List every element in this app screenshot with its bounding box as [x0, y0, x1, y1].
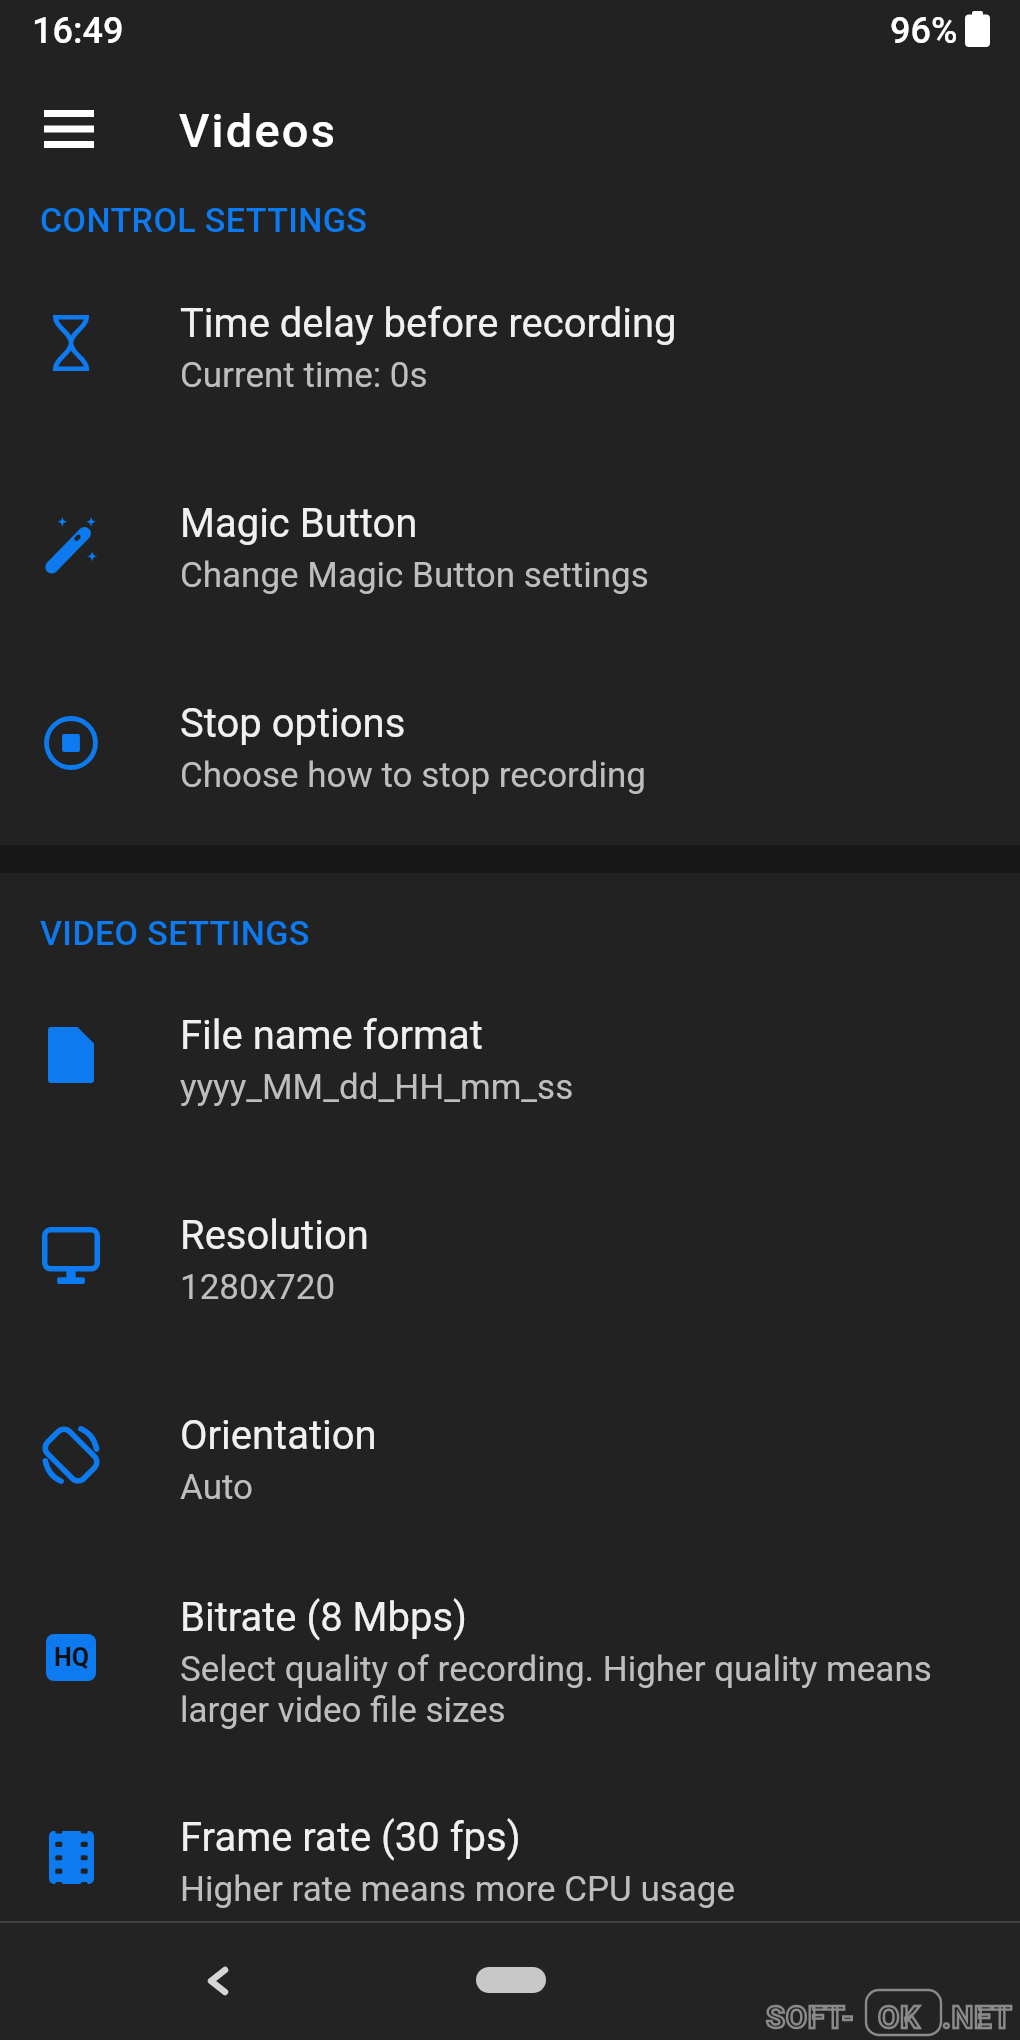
staticText: Orientation: [180, 1412, 377, 1459]
button[interactable]: Frame rate (30 fps): [0, 1814, 1020, 1954]
button[interactable]: Stop options: [0, 700, 1020, 840]
button[interactable]: Open navigation drawer: [14, 88, 124, 170]
staticText: Current time: 0s: [180, 355, 428, 396]
staticText: Frame rate (30 fps): [180, 1814, 521, 1861]
staticText: Bitrate (8 Mbps): [180, 1594, 467, 1641]
staticText: Resolution: [180, 1212, 369, 1259]
button[interactable]: File name format: [0, 1012, 1020, 1152]
button[interactable]: Resolution: [0, 1212, 1020, 1352]
staticText: File name format: [180, 1012, 483, 1059]
staticText: 16:49: [32, 10, 124, 52]
button[interactable]: Back: [178, 1941, 258, 2021]
staticText: .NET: [942, 1999, 1013, 2035]
staticText: Time delay before recording: [180, 300, 677, 347]
staticText: 96%: [890, 10, 958, 52]
button[interactable]: Time delay before recording: [0, 300, 1020, 440]
staticText: CONTROL SETTINGS: [40, 200, 368, 240]
staticText: Auto: [180, 1467, 254, 1508]
staticText: Stop options: [180, 700, 406, 747]
button[interactable]: Magic Button: [0, 500, 1020, 640]
staticText: Magic Button: [180, 500, 418, 547]
staticText: SOFT-: [766, 1999, 855, 2035]
staticText: OK: [878, 1999, 921, 2035]
staticText: Videos: [179, 103, 338, 158]
button[interactable]: Orientation: [0, 1412, 1020, 1552]
staticText: 1280x720: [180, 1267, 336, 1308]
staticText: Higher rate means more CPU usage: [180, 1869, 736, 1910]
staticText: Choose how to stop recording: [180, 755, 646, 796]
button[interactable]: Home: [476, 1967, 546, 1993]
staticText: Select quality of recording. Higher qual…: [180, 1649, 940, 1731]
staticText: yyyy_MM_dd_HH_mm_ss: [180, 1067, 574, 1108]
button[interactable]: HQ: [0, 1594, 1020, 1774]
staticText: HQ: [54, 1643, 89, 1672]
staticText: VIDEO SETTINGS: [40, 913, 310, 953]
staticText: Change Magic Button settings: [180, 555, 649, 596]
